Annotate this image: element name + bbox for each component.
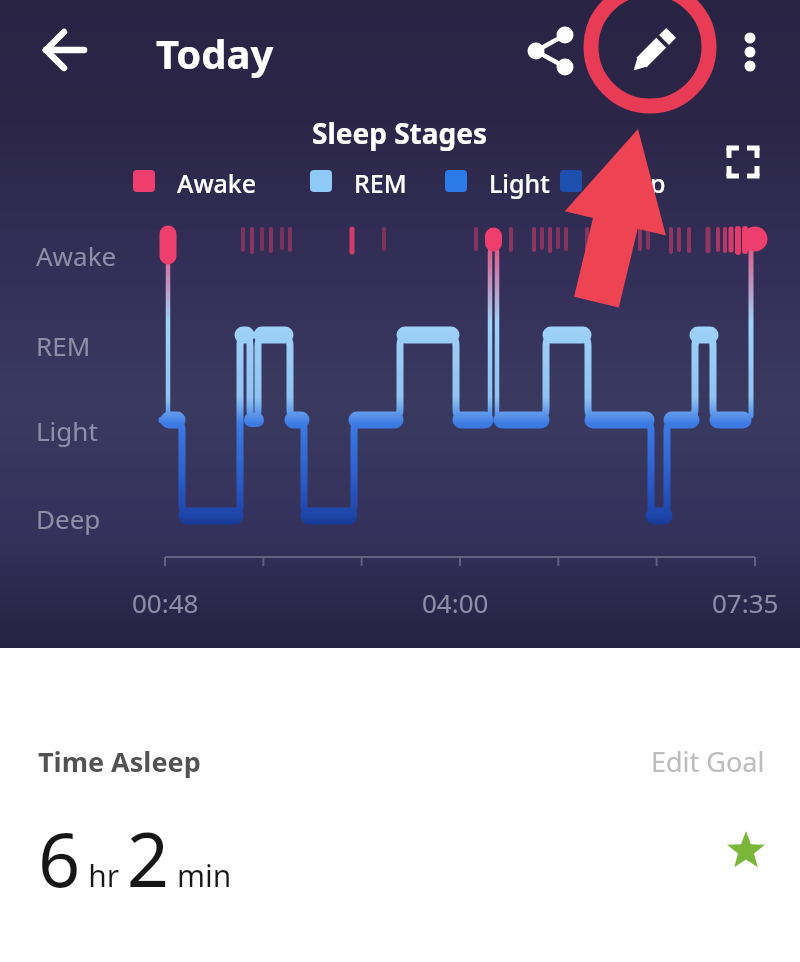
staticText: Light bbox=[489, 166, 550, 200]
staticText: REM bbox=[354, 166, 407, 200]
staticText: Edit Goal bbox=[651, 743, 765, 780]
staticText: Awake bbox=[177, 166, 257, 200]
button[interactable]: Today bbox=[156, 26, 274, 80]
staticText: Today bbox=[156, 26, 274, 80]
staticText: Time Asleep bbox=[38, 743, 201, 780]
staticText: Deep bbox=[603, 166, 666, 200]
staticText: 6 hr 2 min bbox=[38, 808, 232, 909]
staticText: REM bbox=[36, 328, 91, 363]
staticText: Awake bbox=[36, 238, 117, 273]
staticText: 00:48 bbox=[132, 585, 199, 620]
button[interactable] bbox=[40, 26, 88, 74]
button[interactable]: Edit Goal bbox=[465, 743, 765, 780]
staticText: Sleep Stages bbox=[312, 114, 488, 152]
button[interactable] bbox=[719, 138, 767, 186]
button[interactable] bbox=[628, 26, 676, 74]
staticText: Light bbox=[36, 413, 98, 448]
staticText: Deep bbox=[36, 501, 101, 536]
staticText: 04:00 bbox=[422, 585, 489, 620]
button[interactable] bbox=[527, 26, 575, 74]
button[interactable] bbox=[726, 26, 774, 74]
staticText: 07:35 bbox=[712, 585, 779, 620]
